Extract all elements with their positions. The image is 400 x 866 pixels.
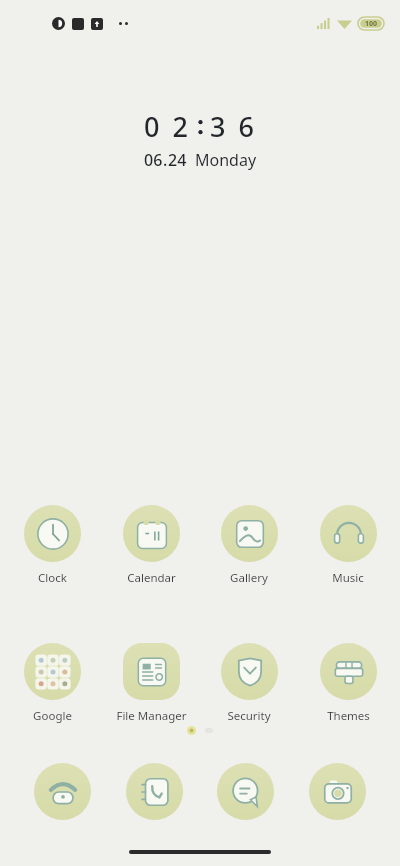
button[interactable]: Google (5, 643, 99, 724)
button[interactable]: Messages (217, 763, 274, 820)
staticText: 24 (168, 149, 187, 171)
staticText: 3 6 (210, 108, 257, 145)
staticText: Clock (38, 570, 67, 586)
staticText: Gallery (230, 570, 268, 586)
button[interactable]: Phone (34, 763, 91, 820)
button[interactable]: Themes (301, 643, 395, 724)
staticText: Security (227, 708, 271, 724)
staticText: Google (33, 708, 72, 724)
staticText: Themes (327, 708, 370, 724)
staticText: Music (332, 570, 364, 586)
staticText: Calendar (127, 570, 176, 586)
button[interactable]: Music (301, 505, 395, 586)
staticText: Monday (195, 149, 257, 171)
button[interactable]: File Manager (104, 643, 198, 724)
staticText: File Manager (116, 708, 187, 724)
button[interactable]: Gallery (202, 505, 296, 586)
staticText: . (163, 149, 168, 171)
button[interactable]: Camera (309, 763, 366, 820)
button[interactable]: Contacts (126, 763, 183, 820)
button[interactable]: Calendar (104, 505, 198, 586)
staticText: 0 2 (144, 108, 191, 145)
staticText: 100 (365, 19, 378, 29)
staticText: 06 (144, 149, 163, 171)
button[interactable]: Clock (5, 505, 99, 586)
button[interactable]: Security (202, 643, 296, 724)
